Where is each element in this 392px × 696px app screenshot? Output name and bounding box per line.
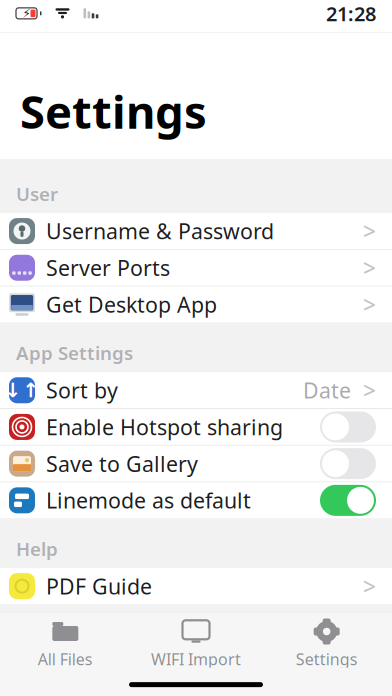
button[interactable]: Save to Gallery [0,446,392,482]
staticText: Save to Gallery [46,449,198,478]
staticText: Linemode as default [46,486,251,514]
button[interactable]: All Files [0,610,131,670]
staticText: Sort by [46,376,118,404]
staticText: Settings [20,81,207,141]
button[interactable]: ↓ [0,372,392,408]
staticText: 21:28 [326,0,376,27]
staticText: ⚡︎ [22,7,30,20]
staticText: Server Ports [46,254,170,282]
staticText: > [363,375,376,405]
staticText: > [363,571,376,601]
staticText: App Settings [16,340,133,365]
button[interactable]: Username & Password [0,213,392,249]
staticText: > [363,253,376,283]
staticText: Help [16,536,58,561]
staticText: PDF Guide [46,572,152,600]
button[interactable]: Linemode as default [0,482,392,518]
button[interactable]: Server Ports [0,250,392,286]
button[interactable]: Get Desktop App [0,286,392,322]
staticText: Enable Hotspot sharing [46,413,283,441]
staticText: ↓ [4,379,21,402]
button[interactable]: Settings [261,610,392,670]
staticText: ↑ [22,379,39,402]
button[interactable]: WIFI Import [131,610,261,670]
staticText: Settings [296,648,358,670]
staticText: Username & Password [46,217,274,245]
staticText: > [363,289,376,319]
staticText: Get Desktop App [46,290,217,319]
staticText: User [16,181,58,206]
button[interactable]: Enable Hotspot sharing [0,409,392,445]
staticText: Date [303,376,351,404]
staticText: > [363,216,376,246]
staticText: All Files [38,648,93,670]
staticText: WIFI Import [151,648,241,670]
button[interactable]: PDF Guide [0,568,392,604]
